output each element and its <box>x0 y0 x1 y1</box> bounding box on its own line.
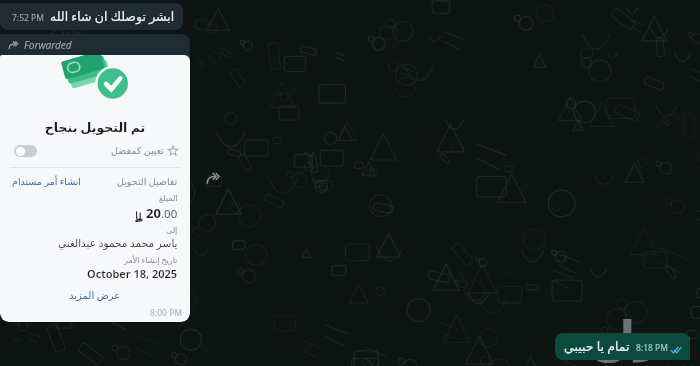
button[interactable]: تمام يا حبيبي <box>555 333 690 360</box>
staticText: 20 <box>146 204 161 222</box>
staticText: تاريخ إنشاء الأمر <box>124 254 178 265</box>
staticText: عرض المزيد <box>69 288 121 302</box>
button[interactable]: Forwarded <box>0 34 190 322</box>
button[interactable]: Forward <box>202 167 224 189</box>
button[interactable]: انشاء أمر مستدام <box>12 175 81 188</box>
staticText: تعيين كمفضل <box>111 144 164 157</box>
staticText: ابشر توصلك ان شاء الله <box>50 8 175 25</box>
button[interactable]: عرض المزيد <box>0 288 190 302</box>
staticText: October 18, 2025 <box>87 266 178 281</box>
button[interactable]: Set as favourite <box>14 145 37 157</box>
button[interactable]: 7:52 PM <box>0 3 183 30</box>
staticText: إلى <box>166 226 178 235</box>
staticText: تفاصيل التحويل <box>117 175 178 188</box>
staticText: المبلغ <box>159 194 178 203</box>
staticText: تمام يا حبيبي <box>564 338 630 355</box>
staticText: تم التحويل بنجاح <box>0 119 190 136</box>
staticText: 7:52 PM <box>12 12 44 24</box>
staticText: 8:00 PM <box>0 307 182 319</box>
staticText: حراج <box>588 311 694 362</box>
staticText: .00 <box>161 206 178 222</box>
staticText: انشاء أمر مستدام <box>12 175 81 188</box>
staticText: 8:18 PM <box>636 342 668 354</box>
staticText: Forwarded <box>24 38 72 52</box>
staticText: ياسر محمد محمود عبدالغني <box>58 236 178 250</box>
